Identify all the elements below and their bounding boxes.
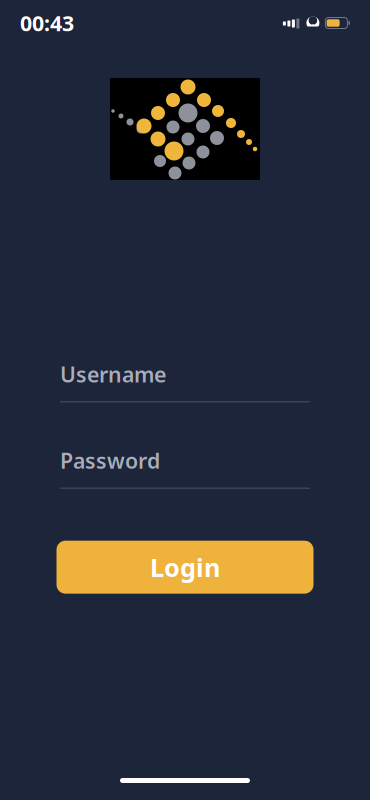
staticText: Password xyxy=(60,446,160,475)
button[interactable]: Password xyxy=(60,446,310,489)
button[interactable]: Username xyxy=(60,360,310,402)
button[interactable]: Login xyxy=(56,541,313,594)
staticText: Login xyxy=(150,550,220,584)
staticText: 00:43 xyxy=(20,9,74,37)
staticText: Username xyxy=(60,360,166,388)
